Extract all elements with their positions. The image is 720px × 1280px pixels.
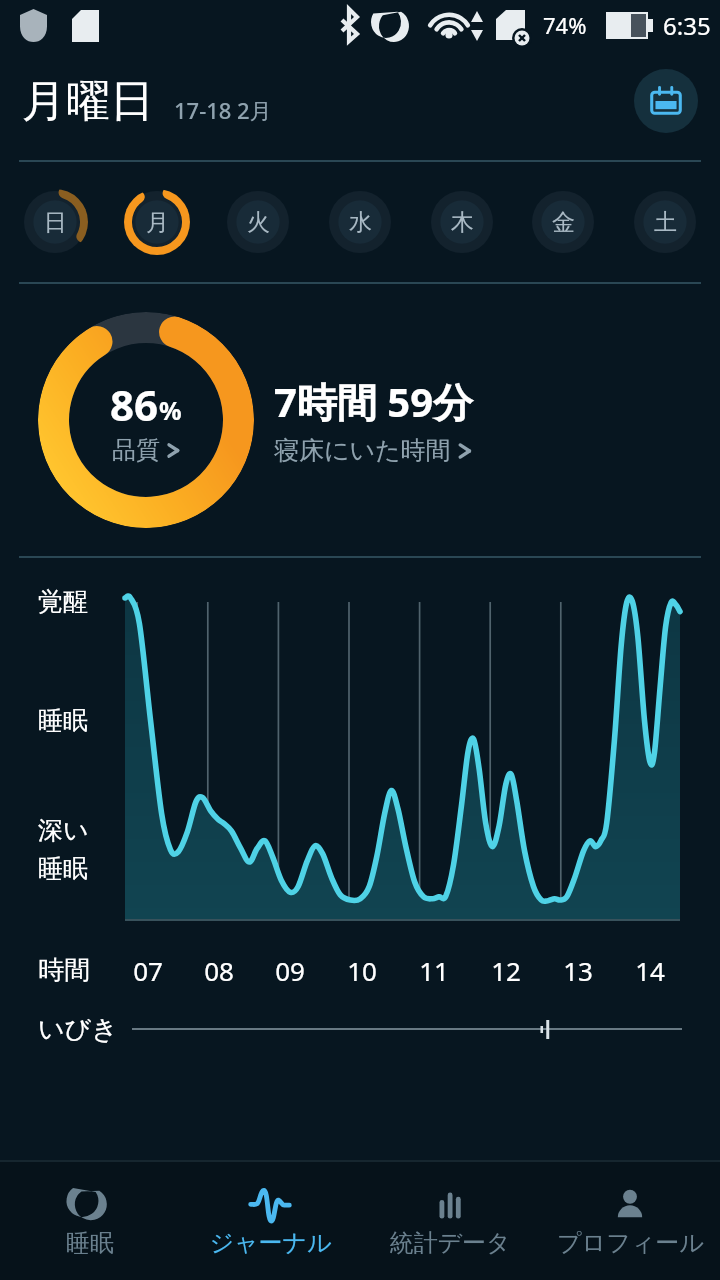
staticText: 17-18 2月 xyxy=(174,95,272,125)
button[interactable]: プロフィール xyxy=(540,1162,720,1280)
staticText: % xyxy=(159,393,182,427)
staticText: 深い xyxy=(38,815,89,846)
staticText: 6:35 xyxy=(663,9,711,42)
staticText: 10 xyxy=(347,953,377,988)
button[interactable]: 金 xyxy=(530,189,596,255)
staticText: いびき xyxy=(38,1013,118,1046)
button[interactable]: 睡眠 xyxy=(0,1162,180,1280)
button[interactable]: ジャーナル xyxy=(180,1162,360,1280)
staticText: 日 xyxy=(44,208,67,237)
staticText: 13 xyxy=(563,953,593,988)
staticText: 睡眠 xyxy=(38,705,88,736)
staticText: 7時間 59分 xyxy=(274,374,474,429)
staticText: 水 xyxy=(349,208,372,237)
staticText: 14 xyxy=(635,953,665,988)
staticText: 07 xyxy=(133,953,163,988)
staticText: 木 xyxy=(451,208,474,237)
staticText: 12 xyxy=(491,953,521,988)
staticText: 86 xyxy=(110,376,159,433)
button[interactable]: 水 xyxy=(327,189,393,255)
staticText: 11 xyxy=(419,953,449,988)
staticText: 覚醒 xyxy=(38,586,88,617)
button[interactable]: 7時間 59分 xyxy=(274,374,474,466)
button[interactable]: いびき xyxy=(38,998,682,1060)
button[interactable]: Calendar xyxy=(634,69,698,133)
staticText: 09 xyxy=(275,953,305,988)
button[interactable]: 統計データ xyxy=(360,1162,540,1280)
staticText: 金 xyxy=(552,208,575,237)
staticText: 月曜日 xyxy=(22,74,154,129)
staticText: 74% xyxy=(543,10,587,40)
staticText: 品質 xyxy=(112,435,160,465)
button[interactable]: 火 xyxy=(225,189,291,255)
button[interactable]: 木 xyxy=(429,189,495,255)
button[interactable]: 土 xyxy=(632,189,698,255)
staticText: 月 xyxy=(146,208,169,237)
staticText: 寝床にいた時間 xyxy=(274,435,451,466)
staticText: 睡眠 xyxy=(38,853,88,884)
staticText: プロフィール xyxy=(557,1228,704,1258)
button[interactable]: 日 xyxy=(22,189,88,255)
staticText: ジャーナル xyxy=(209,1228,332,1258)
staticText: 土 xyxy=(654,208,677,237)
staticText: 時間 xyxy=(38,954,90,987)
staticText: 08 xyxy=(204,953,234,988)
staticText: 火 xyxy=(247,208,270,237)
button[interactable]: 86 xyxy=(38,312,254,528)
staticText: 統計データ xyxy=(389,1228,511,1258)
button[interactable]: 月 xyxy=(124,189,190,255)
staticText: 睡眠 xyxy=(66,1228,114,1258)
